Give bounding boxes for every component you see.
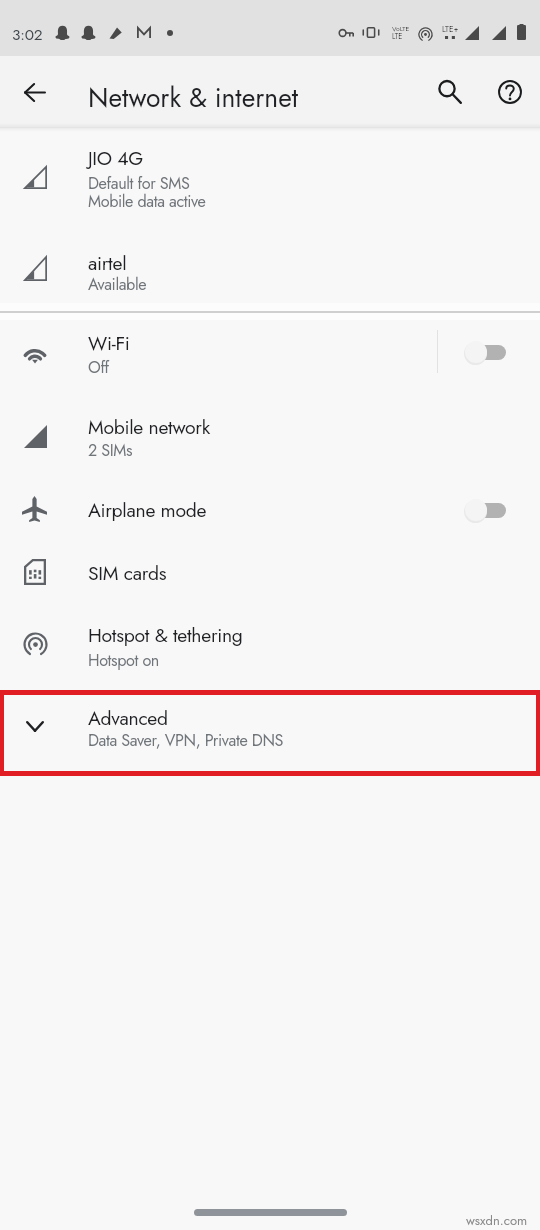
staticText: Mobile data active — [88, 190, 206, 213]
staticText: Hotspot on — [88, 649, 159, 672]
staticText: Data Saver, VPN, Private DNS — [88, 729, 283, 752]
button[interactable]: Help — [486, 68, 534, 116]
staticText: VoLTE — [392, 24, 410, 34]
staticText: 2 SIMs — [88, 439, 133, 462]
button[interactable] — [0, 312, 540, 384]
staticText: Hotspot & tethering — [88, 621, 243, 649]
staticText: Wi-Fi — [88, 329, 130, 357]
staticText: Mobile network — [88, 413, 210, 441]
staticText: LTE — [392, 31, 403, 42]
button[interactable] — [0, 133, 540, 228]
staticText: JIO 4G — [88, 144, 144, 172]
staticText: Airplane mode — [88, 496, 207, 524]
button[interactable]: Search — [425, 67, 473, 115]
staticText: Advanced — [88, 704, 168, 732]
staticText: 3:02 — [12, 23, 43, 45]
button[interactable] — [4, 695, 536, 771]
button[interactable]: Back — [11, 68, 59, 116]
button[interactable] — [0, 543, 540, 603]
staticText: Off — [88, 356, 109, 379]
button[interactable] — [0, 228, 540, 310]
button[interactable] — [0, 480, 540, 540]
staticText: LTE+ — [442, 23, 459, 35]
button[interactable] — [0, 605, 540, 677]
staticText: SIM cards — [88, 559, 167, 587]
staticText: Available — [88, 273, 147, 296]
staticText: wsxdn.com — [466, 1211, 528, 1230]
button[interactable]: Airplane mode switch — [458, 488, 534, 532]
button[interactable] — [0, 396, 540, 468]
staticText: airtel — [88, 249, 127, 277]
staticText: Network & internet — [88, 79, 299, 117]
staticText: Default for SMS — [88, 172, 190, 195]
button[interactable]: Wi-Fi switch — [458, 330, 534, 374]
